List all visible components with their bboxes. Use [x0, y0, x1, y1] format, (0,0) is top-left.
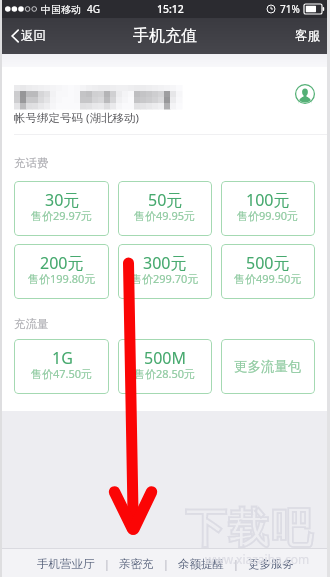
button[interactable]: 更多流量包 [221, 339, 315, 394]
staticText: 更多流量包 [234, 358, 302, 375]
staticText: 100元 [246, 189, 290, 211]
staticText: www.xiazaiba.com [205, 551, 310, 567]
button[interactable]: 手机营业厅 [35, 551, 97, 575]
staticText: 50元 [148, 189, 183, 211]
staticText: 手机营业厅 [37, 557, 95, 571]
button[interactable]: 500元 [221, 244, 315, 299]
staticText: 余额提醒 [178, 557, 224, 571]
button[interactable]: Account [294, 83, 316, 105]
button[interactable]: 客服 [283, 18, 330, 54]
staticText: 售价299.70元 [131, 271, 199, 286]
button[interactable]: 余额提醒 [176, 551, 226, 575]
button[interactable]: 200元 [14, 244, 109, 299]
staticText: 手机充值 [133, 26, 197, 46]
staticText: 500元 [246, 252, 290, 274]
staticText: 亲密充 [119, 557, 154, 571]
staticText: | [104, 557, 110, 571]
staticText: 300元 [143, 252, 187, 274]
staticText: 15:12 [157, 2, 184, 16]
staticText: 充流量 [14, 317, 49, 331]
staticText: 售价99.90元 [237, 208, 299, 223]
staticText: 30元 [45, 189, 80, 211]
staticText: 更多服务 [248, 557, 294, 571]
staticText: 售价49.95元 [134, 208, 196, 223]
button[interactable]: 100元 [221, 181, 315, 236]
staticText: 1G [52, 347, 73, 369]
button[interactable]: 1G [14, 339, 109, 394]
staticText: 充话费 [14, 156, 49, 170]
button[interactable]: 亲密充 [117, 551, 156, 575]
button[interactable]: 300元 [118, 244, 212, 299]
staticText: 帐号绑定号码 (湖北移动) [14, 110, 139, 126]
staticText: 售价29.97元 [31, 208, 93, 223]
staticText: 71% [280, 2, 300, 16]
staticText: 售价499.50元 [234, 271, 302, 286]
staticText: | [233, 557, 239, 571]
staticText: 返回 [21, 28, 46, 44]
staticText: 下载吧 [184, 503, 313, 555]
staticText: 售价28.50元 [134, 366, 196, 381]
staticText: | [163, 557, 169, 571]
button[interactable]: 返回 [0, 18, 58, 54]
staticText: 200元 [40, 252, 84, 274]
staticText: 中国移动 [41, 3, 81, 16]
staticText: 500M [144, 347, 186, 369]
button[interactable]: 30元 [14, 181, 109, 236]
button[interactable]: 更多服务 [246, 551, 296, 575]
staticText: 售价47.50元 [31, 366, 93, 381]
staticText: 客服 [295, 28, 320, 44]
button[interactable]: 50元 [118, 181, 212, 236]
staticText: 4G [87, 2, 100, 16]
staticText: 售价199.80元 [28, 271, 96, 286]
button[interactable]: 500M [118, 339, 212, 394]
